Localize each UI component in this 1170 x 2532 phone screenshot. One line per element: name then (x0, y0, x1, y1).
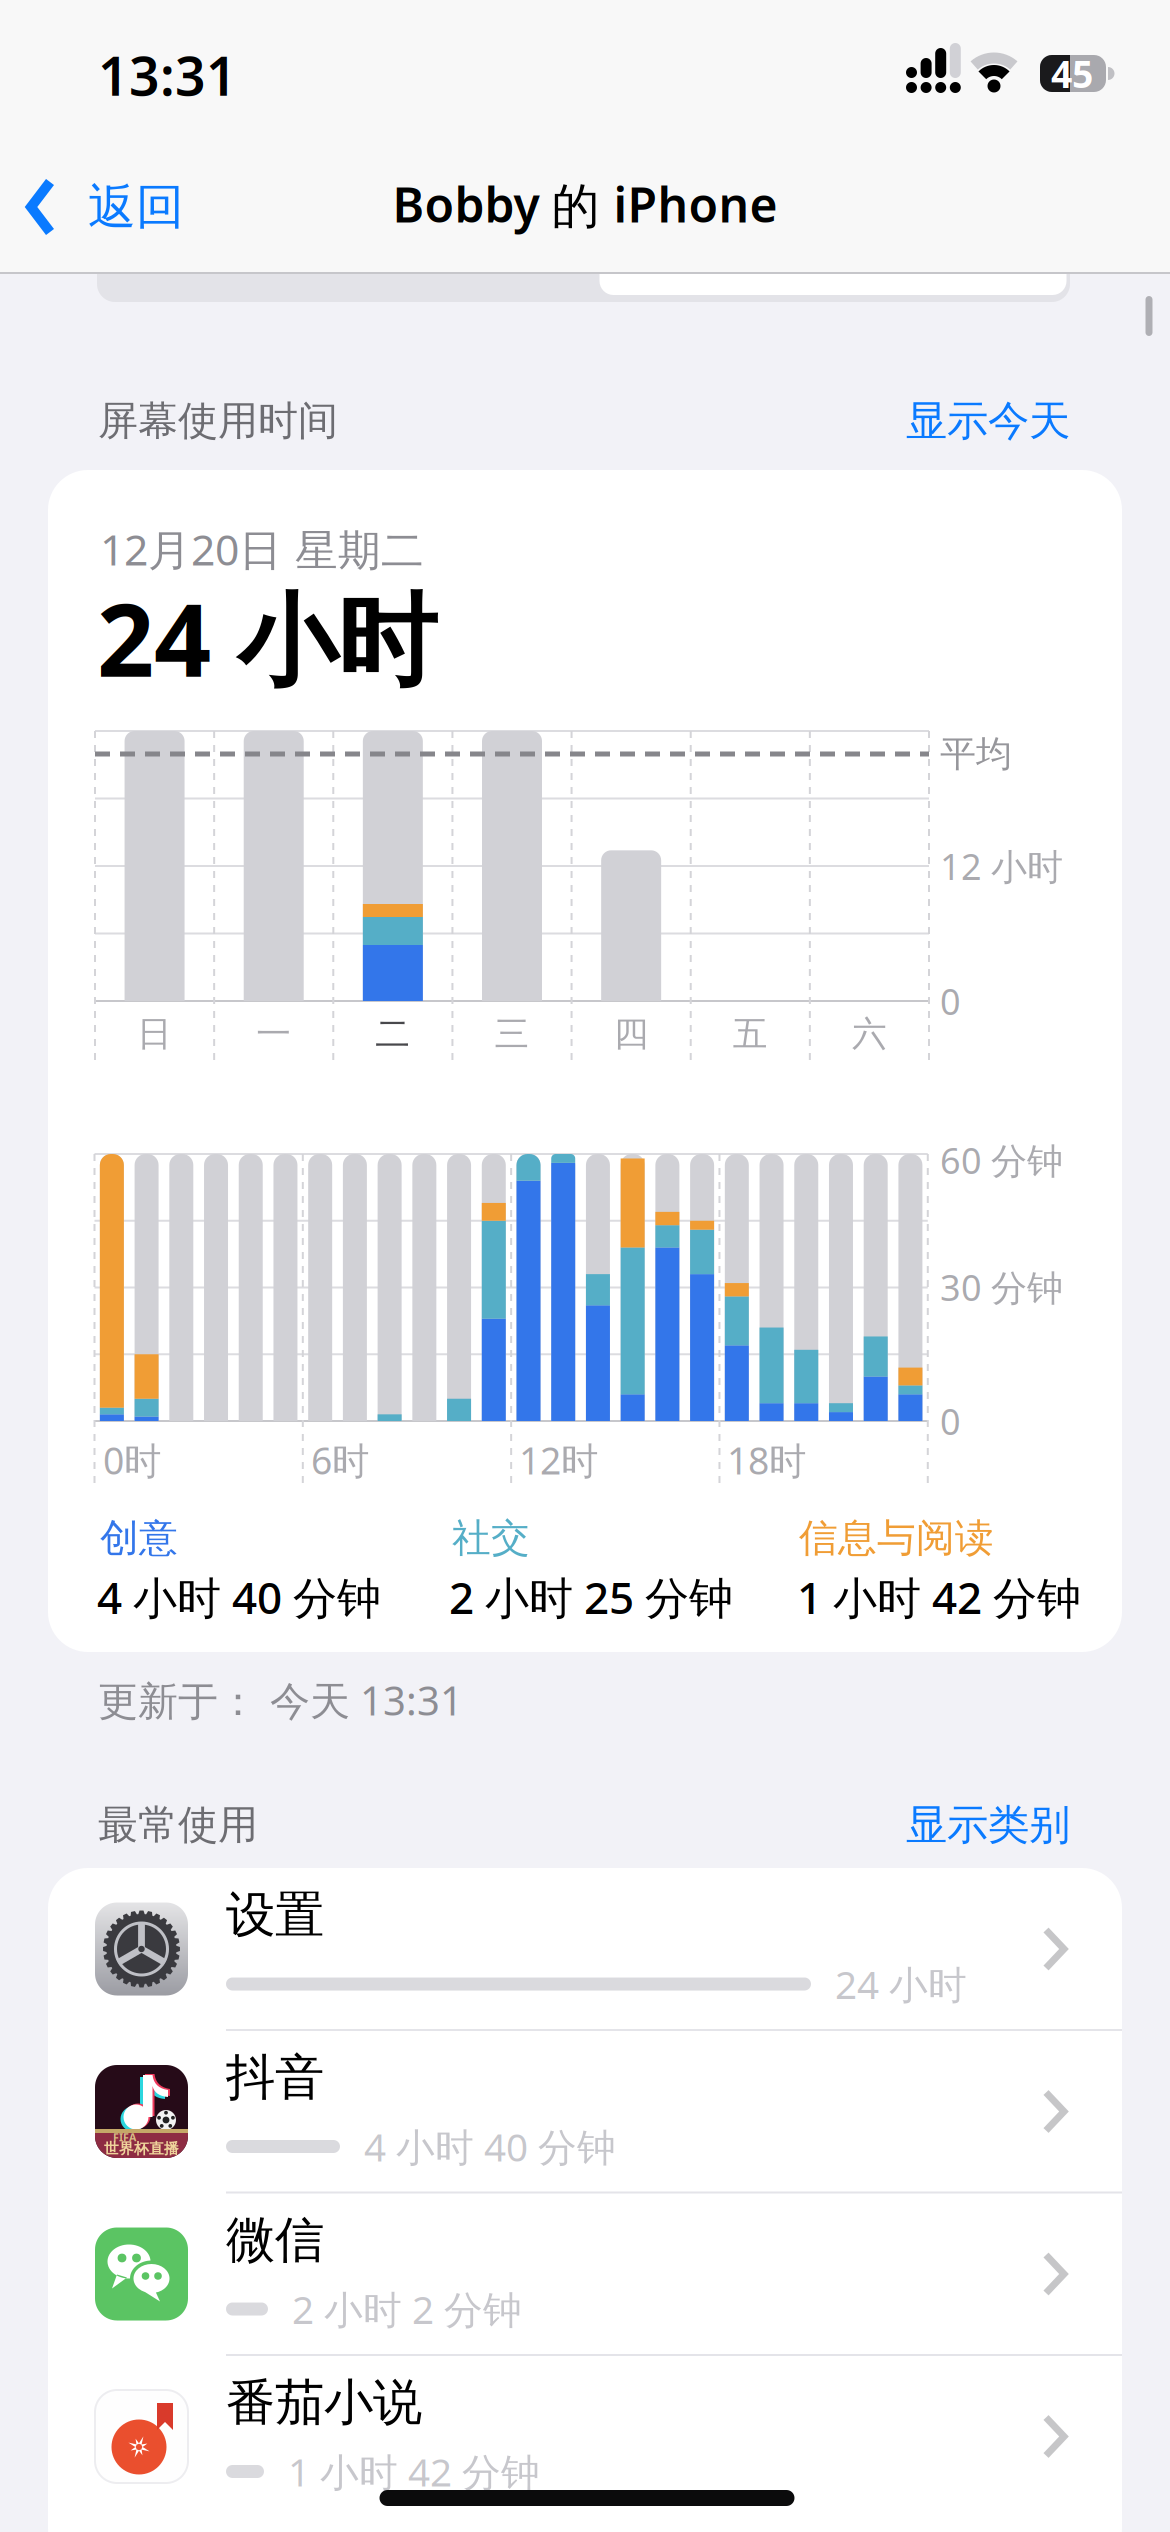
staticText: 世界杯直播 (104, 2139, 179, 2157)
button[interactable]: 显示类别 (770, 1780, 1070, 1870)
staticText: 信息与阅读 (799, 1514, 994, 1562)
staticText: 12时 (519, 1435, 598, 1485)
staticText: 1 小时 42 分钟 (288, 2446, 540, 2497)
staticText: 创意 (100, 1514, 178, 1562)
staticText: 0时 (103, 1435, 161, 1485)
staticText: 五 (733, 1013, 768, 1055)
staticText: 一 (256, 1013, 291, 1055)
staticText: 24 小时 (835, 1958, 967, 2010)
staticText: 2 小时 25 分钟 (449, 1568, 733, 1626)
staticText: 4 小时 40 分钟 (364, 2121, 616, 2172)
staticText: 屏幕使用时间 (98, 396, 338, 445)
staticText: 四 (614, 1013, 649, 1055)
button[interactable]: 设置 (48, 1868, 1122, 2030)
staticText: 更新于： 今天 13:31 (98, 1673, 463, 1726)
staticText: 2 小时 2 分钟 (292, 2283, 522, 2335)
staticText: 4 小时 40 分钟 (97, 1568, 381, 1626)
staticText: 0 (940, 977, 961, 1025)
staticText: 12月20日 星期二 (100, 521, 424, 577)
staticText: 45 (1051, 49, 1093, 98)
staticText: 二 (375, 1013, 410, 1055)
staticText: 24 小时 (97, 572, 437, 704)
button[interactable]: 返回 (28, 181, 218, 233)
staticText: 60 分钟 (940, 1136, 1063, 1184)
staticText: 显示类别 (906, 1800, 1070, 1850)
staticText: 设置 (226, 1885, 324, 1945)
button[interactable]: 显示今天 (770, 376, 1070, 466)
button[interactable]: FIFA (48, 2030, 1122, 2193)
staticText: 微信 (226, 2210, 324, 2270)
staticText: 显示今天 (906, 396, 1070, 446)
staticText: 平均 (940, 732, 1012, 776)
staticText: 番茄小说 (226, 2372, 422, 2433)
staticText: 抖音 (226, 2047, 324, 2108)
button[interactable] (97, 247, 1070, 302)
staticText: 1 小时 42 分钟 (797, 1568, 1081, 1626)
staticText: 0 (940, 1397, 961, 1445)
button[interactable]: 微信 (48, 2193, 1122, 2355)
staticText: FIFA (113, 2130, 136, 2144)
staticText: 30 分钟 (940, 1263, 1063, 1311)
staticText: Bobby 的 iPhone (392, 172, 777, 236)
staticText: 返回 (88, 177, 184, 236)
staticText: 12 小时 (940, 842, 1063, 890)
staticText: 社交 (452, 1514, 530, 1562)
button[interactable]: 番茄小说 (48, 2355, 1122, 2518)
staticText: 六 (852, 1013, 887, 1055)
staticText: 13:31 (98, 40, 237, 110)
staticText: 三 (494, 1013, 529, 1055)
staticText: 18时 (727, 1435, 806, 1485)
staticText: 最常使用 (98, 1800, 258, 1849)
staticText: 日 (137, 1013, 172, 1055)
staticText: 6时 (311, 1435, 369, 1485)
